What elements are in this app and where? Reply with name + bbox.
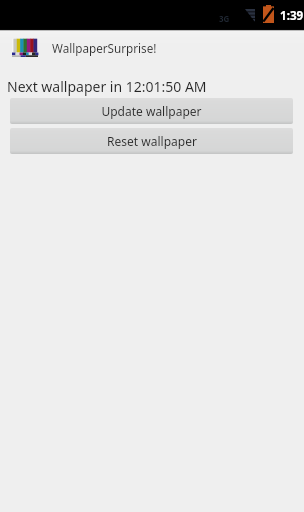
- button[interactable]: Reset wallpaper: [10, 128, 293, 154]
- button[interactable]: Update wallpaper: [10, 98, 293, 124]
- other: Signal strength: [245, 9, 255, 22]
- staticText: WallpaperSurprise!: [52, 40, 157, 56]
- staticText: Update wallpaper: [101, 103, 202, 119]
- staticText: Reset wallpaper: [107, 133, 197, 149]
- other: Battery: [263, 5, 274, 23]
- staticText: 1:39: [280, 8, 304, 24]
- staticText: Next wallpaper in 12:01:50 AM: [7, 77, 207, 96]
- button[interactable]: WallpaperSurprise!: [0, 31, 162, 65]
- staticText: 3G: [219, 13, 230, 24]
